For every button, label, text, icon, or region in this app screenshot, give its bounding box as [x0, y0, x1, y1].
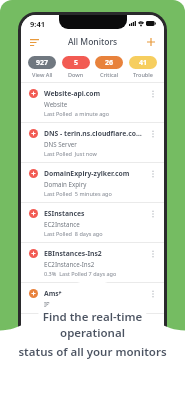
button[interactable]: Amstel-FIT3-VM	[21, 283, 164, 314]
button[interactable]: More options	[148, 209, 158, 219]
button[interactable]: More options	[148, 129, 158, 139]
staticText: 5	[74, 58, 79, 68]
button[interactable]: 927	[26, 56, 58, 78]
staticText: Last Polled a minute ago	[44, 110, 110, 117]
staticText: DNS Server	[44, 140, 77, 148]
button[interactable]: Filter	[26, 34, 42, 50]
staticText: 9:41	[30, 19, 45, 29]
staticText: 0.3% Last Polled 7 days ago	[44, 270, 117, 277]
staticText: Last Polled 8 days ago	[44, 230, 103, 237]
button[interactable]: 5	[60, 56, 92, 78]
button[interactable]: More options	[148, 169, 158, 179]
staticText: status of all your monitors	[18, 344, 167, 360]
button[interactable]: EBInstances-Ins2	[21, 243, 164, 283]
staticText: Last Polled 5 minutes ago	[44, 190, 112, 197]
staticText: Domain Expiry	[44, 180, 87, 188]
button[interactable]: 26	[93, 56, 125, 78]
staticText: Last Polled Just now	[44, 150, 97, 157]
button[interactable]: 41	[127, 56, 159, 78]
staticText: 26	[105, 58, 114, 68]
staticText: View All	[32, 71, 53, 78]
button[interactable]: More options	[148, 89, 158, 99]
staticText: EC2Instance-Ins2	[44, 260, 95, 268]
staticText: DomainExpiry-zylker.com	[44, 169, 130, 178]
staticText: 927	[36, 58, 49, 68]
staticText: EC2Instance	[44, 220, 80, 228]
button[interactable]: DNS - terin.ns.cloudflare.com - zylker…	[21, 123, 164, 163]
staticText: Critical	[100, 71, 119, 78]
staticText: Website	[44, 100, 68, 108]
staticText: 41	[139, 58, 148, 68]
button[interactable]: DomainExpiry-zylker.com	[21, 163, 164, 203]
staticText: Down	[68, 71, 84, 78]
staticText: Website-api.com	[44, 89, 101, 98]
staticText: ESInstances	[44, 209, 85, 218]
button[interactable]: Add monitor	[143, 34, 159, 50]
button[interactable]: Website-api.com	[21, 83, 164, 123]
staticText: IP	[44, 300, 50, 308]
staticText: EBInstances-Ins2	[44, 249, 102, 258]
staticText: Find the real-time operational	[14, 309, 171, 341]
button[interactable]: ESInstances	[21, 203, 164, 243]
staticText: Amstel-FIT3-VM	[44, 289, 98, 298]
button[interactable]: More options	[148, 289, 158, 299]
button[interactable]: More options	[148, 249, 158, 259]
staticText: DNS - terin.ns.cloudflare.com - zylker…	[44, 129, 148, 138]
staticText: Trouble	[133, 71, 153, 78]
staticText: All Monitors	[68, 36, 118, 48]
